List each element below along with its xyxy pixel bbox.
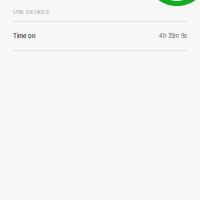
button[interactable]: Time on — [0, 22, 200, 50]
staticText: USE DETAILS — [13, 8, 48, 15]
staticText: 4h 35m 9s — [159, 33, 187, 39]
staticText: Time on — [13, 32, 36, 40]
